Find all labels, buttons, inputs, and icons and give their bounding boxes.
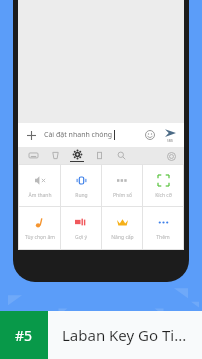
button[interactable]: Send SMS xyxy=(161,128,179,143)
button[interactable]: Nâng cấp xyxy=(102,207,142,249)
button[interactable]: More xyxy=(163,148,179,164)
button[interactable]: Gợi ý xyxy=(61,207,101,249)
button[interactable]: Phím số xyxy=(102,165,142,206)
staticText: Laban Key Go Ti... xyxy=(62,325,187,345)
staticText: Cài đặt nhanh chóng xyxy=(44,130,113,140)
button[interactable]: Search xyxy=(110,147,132,164)
button[interactable]: Âm thanh xyxy=(19,165,60,206)
button[interactable]: Thêm xyxy=(143,207,183,249)
button[interactable]: Tùy chọn âm xyxy=(19,207,60,249)
button[interactable]: Keyboard xyxy=(22,147,44,164)
staticText: Gợi ý xyxy=(75,234,87,241)
button[interactable]: Settings xyxy=(66,147,88,164)
button[interactable]: Emoji xyxy=(142,127,158,143)
staticText: #5 xyxy=(15,326,33,345)
button[interactable]: Themes xyxy=(44,147,66,164)
button[interactable]: Kích cỡ xyxy=(143,165,183,206)
staticText: Phím số xyxy=(113,192,132,199)
staticText: Rung xyxy=(75,192,88,199)
staticText: Tùy chọn âm xyxy=(25,234,55,241)
button[interactable]: Rung xyxy=(61,165,101,206)
staticText: SMS xyxy=(167,139,174,143)
staticText: Thêm xyxy=(156,234,170,241)
button[interactable]: Notes xyxy=(88,147,110,164)
button[interactable]: Add xyxy=(23,127,39,143)
staticText: Nâng cấp xyxy=(111,234,134,241)
staticText: Kích cỡ xyxy=(155,192,172,199)
staticText: Âm thanh xyxy=(28,192,52,199)
